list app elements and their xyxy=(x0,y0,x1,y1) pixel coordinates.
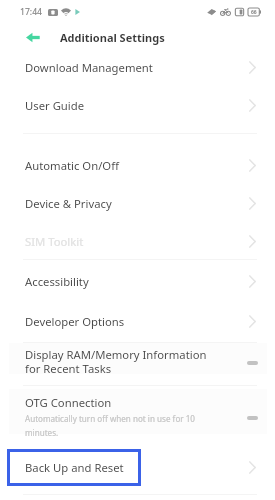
button[interactable]: Developer Options xyxy=(0,301,275,341)
button[interactable]: User Guide xyxy=(0,86,275,124)
button[interactable]: Back Up and Reset xyxy=(7,449,141,486)
staticText: Download Management xyxy=(25,60,153,75)
staticText: OTG Connection xyxy=(25,395,112,410)
staticText: Accessibility xyxy=(25,274,89,289)
button[interactable]: Device & Privacy xyxy=(0,184,275,222)
staticText: Back Up and Reset xyxy=(25,460,124,475)
staticText: Automatic On/Off xyxy=(25,158,119,173)
button[interactable]: OTG Connection xyxy=(0,383,275,441)
staticText: User Guide xyxy=(25,98,85,113)
staticText: Additional Settings xyxy=(60,30,165,45)
staticText: 66 xyxy=(251,9,257,16)
button[interactable]: SIM Toolkit xyxy=(0,222,275,260)
staticText: Device & Privacy xyxy=(25,196,112,211)
button[interactable]: Display RAM/Memory Information for Recen… xyxy=(0,340,275,382)
button[interactable]: Accessibility xyxy=(0,261,275,301)
staticText: SIM Toolkit xyxy=(25,234,84,249)
staticText: Developer Options xyxy=(25,314,125,329)
staticText: Automatically turn off when not in use f… xyxy=(25,413,195,438)
staticText: 17:44 xyxy=(20,6,43,18)
staticText: Display RAM/Memory Information for Recen… xyxy=(25,347,207,376)
button[interactable]: Back xyxy=(22,26,44,48)
button[interactable]: Automatic On/Off xyxy=(0,146,275,184)
button[interactable]: Download Management xyxy=(0,48,275,86)
